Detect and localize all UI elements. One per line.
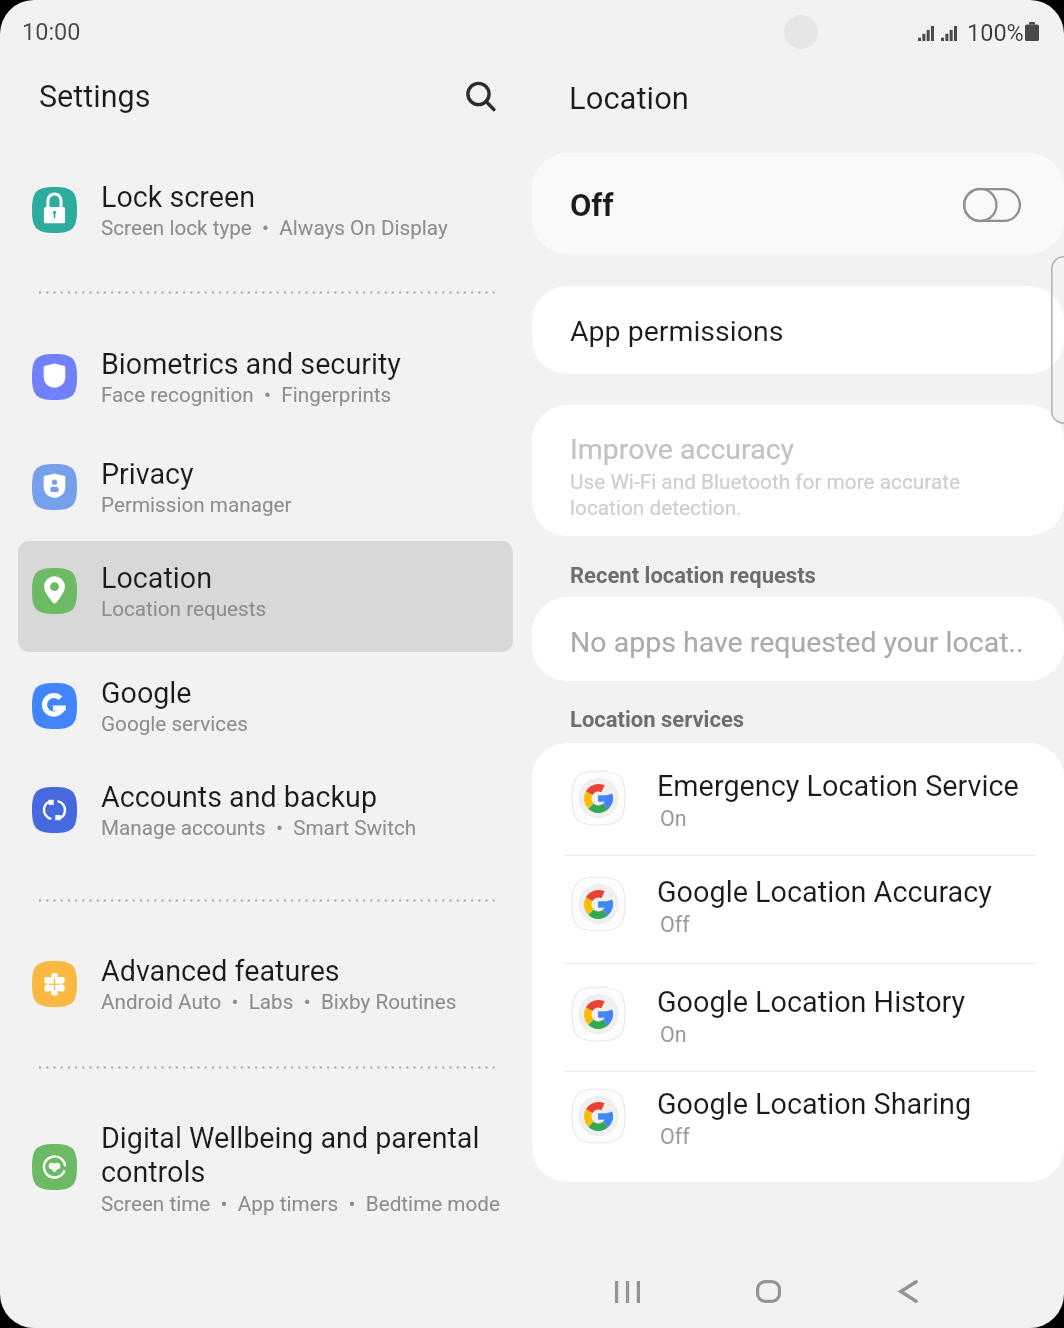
button[interactable] [532, 965, 1064, 1073]
staticText: Screen lock type • Always On Display [101, 216, 448, 240]
button[interactable] [532, 749, 1064, 857]
staticText: Emergency Location Service [657, 769, 1019, 803]
staticText: On [660, 806, 687, 831]
staticText: Google [101, 676, 192, 710]
staticText: 100% [967, 19, 1024, 47]
button[interactable] [532, 855, 1064, 963]
staticText: Face recognition • Fingerprints [101, 383, 392, 407]
button[interactable]: Off [532, 153, 1064, 254]
staticText: location detection. [570, 496, 742, 520]
staticText: Off [660, 912, 690, 937]
staticText: Location services [570, 707, 745, 733]
button[interactable]: Search [454, 70, 502, 118]
staticText: Lock screen [101, 180, 256, 214]
staticText: Off [570, 187, 614, 223]
staticText: Google Location Accuracy [657, 875, 992, 909]
staticText: Screen time • App timers • Bedtime mode [101, 1192, 500, 1216]
staticText: Location requests [101, 597, 267, 621]
staticText: Advanced features [101, 954, 340, 988]
staticText: Recent location requests [570, 563, 816, 589]
staticText: Accounts and backup [101, 780, 378, 814]
button[interactable]: Improve accuracy [532, 405, 1064, 536]
button[interactable] [18, 541, 513, 652]
staticText: Location [569, 80, 689, 116]
staticText: controls [101, 1155, 206, 1189]
staticText: Improve accuracy [570, 433, 795, 466]
staticText: Biometrics and security [101, 347, 401, 381]
staticText: No apps have requested your locat.. [570, 626, 1024, 659]
button[interactable]: Back [874, 1257, 944, 1327]
staticText: Google Location History [657, 985, 966, 1019]
staticText: Privacy [101, 457, 194, 491]
staticText: Google Location Sharing [657, 1087, 972, 1121]
staticText: 10:00 [22, 18, 81, 46]
staticText: Google services [101, 712, 248, 736]
button[interactable]: Home [733, 1257, 803, 1327]
button[interactable]: App permissions [532, 286, 1064, 374]
staticText: On [660, 1022, 687, 1047]
staticText: Use Wi-Fi and Bluetooth for more accurat… [570, 470, 961, 494]
button[interactable]: Recents [592, 1257, 662, 1327]
staticText: Off [660, 1124, 690, 1149]
staticText: Manage accounts • Smart Switch [101, 816, 417, 840]
staticText: Digital Wellbeing and parental [101, 1121, 480, 1155]
staticText: Permission manager [101, 493, 292, 517]
staticText: Android Auto • Labs • Bixby Routines [101, 990, 457, 1014]
staticText: App permissions [570, 315, 784, 348]
staticText: Settings [39, 79, 151, 115]
button[interactable] [532, 1067, 1064, 1175]
staticText: Location [101, 561, 212, 595]
